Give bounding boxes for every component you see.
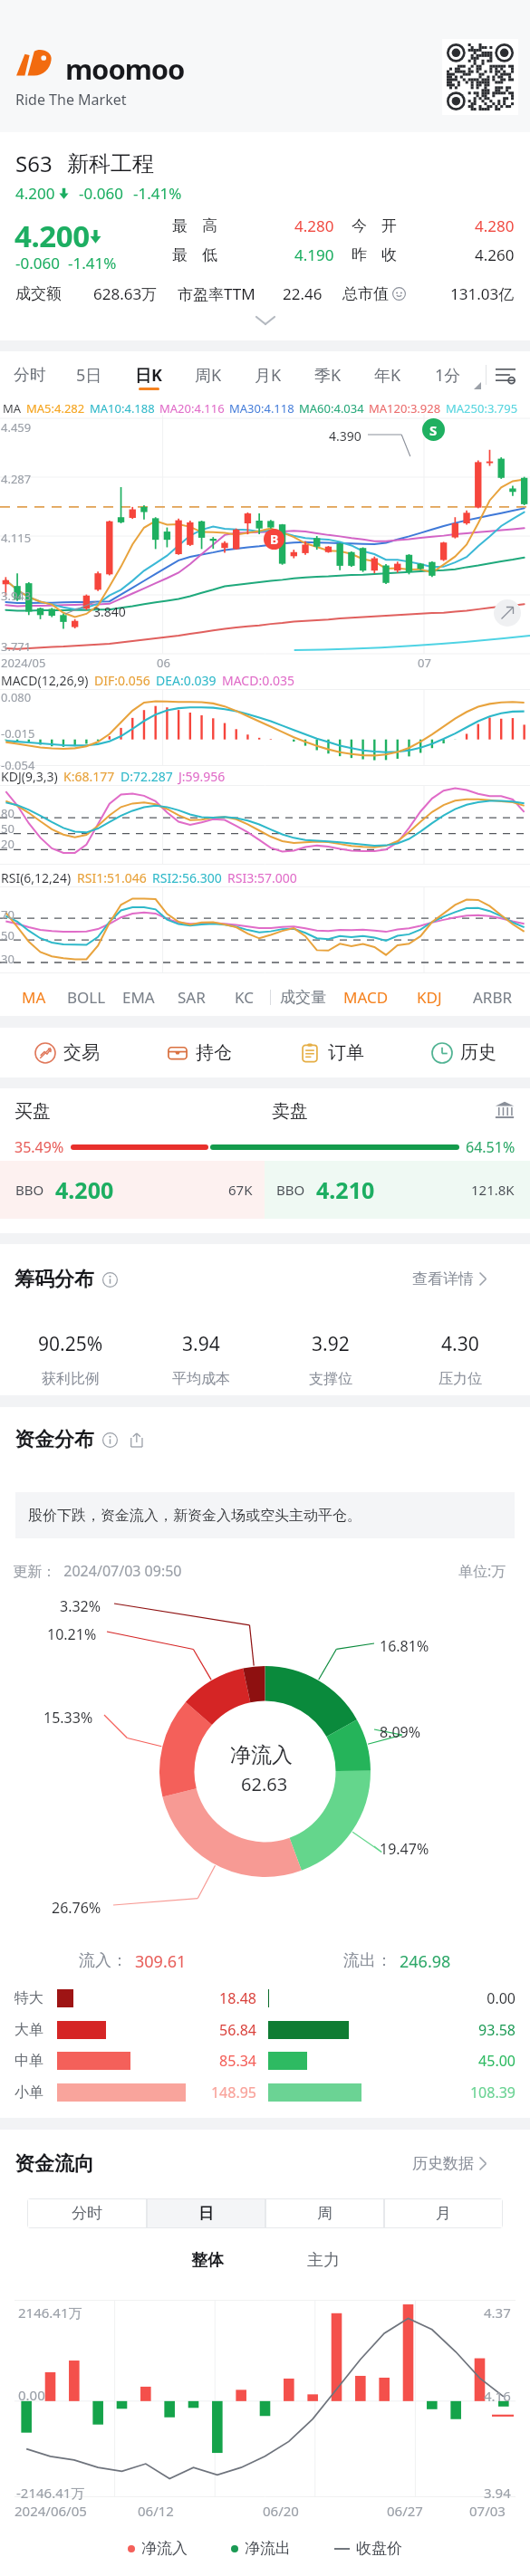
button[interactable]: KDJ [398, 978, 461, 1016]
staticText: 45.00 [406, 2051, 516, 2071]
staticText: Ride The Market [15, 90, 127, 110]
staticText: J:59.956 [178, 768, 226, 785]
staticText: 流出： [343, 1950, 392, 1971]
button[interactable]: 日K [119, 351, 178, 398]
staticText: RSI3:57.000 [227, 869, 297, 886]
staticText: 分时 [14, 365, 46, 386]
button[interactable]: Chart settings [477, 351, 530, 398]
button[interactable]: BBO [15, 1161, 253, 1219]
staticText: 周 [317, 2204, 332, 2223]
button[interactable]: MA [7, 978, 60, 1016]
staticText: 2024/05 [1, 655, 46, 671]
staticText: MA60:4.034 [299, 400, 364, 417]
button[interactable]: 历史数据 [412, 2154, 487, 2173]
button[interactable]: 订单 [265, 1028, 398, 1077]
button[interactable]: Expand chart [494, 599, 521, 627]
staticText: 分时 [72, 2204, 102, 2223]
button[interactable]: 主力 [298, 2250, 349, 2271]
staticText: 季K [314, 364, 342, 387]
staticText: 06/20 [263, 2502, 299, 2520]
staticText: 30 [1, 951, 14, 967]
button[interactable]: MACD [334, 978, 398, 1016]
staticText: 资金分布 [14, 1427, 94, 1452]
staticText: 90.25% [38, 1331, 103, 1357]
button[interactable]: 成交量 [271, 978, 334, 1016]
button[interactable]: 年K [358, 351, 418, 398]
staticText: D:72.287 [120, 768, 173, 785]
button[interactable]: 5日 [59, 351, 119, 398]
button[interactable]: Share [128, 1432, 144, 1448]
staticText: MA250:3.795 [446, 400, 518, 417]
staticText: 85.34 [195, 2051, 256, 2071]
staticText: 2146.41万 [18, 2303, 82, 2322]
button[interactable]: Exchange info [493, 1098, 516, 1122]
staticText: SAR [178, 987, 206, 1008]
staticText: 0.00 [406, 1988, 516, 2008]
staticText: 19.47% [380, 1839, 429, 1859]
button[interactable]: 季K [298, 351, 358, 398]
staticText: 62.63 [241, 1772, 288, 1796]
staticText: 131.03亿 [450, 283, 515, 304]
staticText: 历史数据 [412, 2154, 474, 2173]
staticText: MA10:4.188 [90, 400, 155, 417]
staticText: 8.09% [380, 1722, 421, 1742]
button[interactable]: 交易 [0, 1028, 133, 1077]
staticText: KDJ [417, 987, 442, 1008]
staticText: S63 [15, 148, 53, 178]
staticText: 主力 [307, 2250, 340, 2271]
button[interactable]: 1分 [418, 351, 477, 398]
staticText: 06/12 [138, 2502, 174, 2520]
button[interactable]: 周 [266, 2199, 383, 2227]
staticText: ARBR [473, 987, 513, 1008]
staticText: 总市值 [342, 284, 389, 303]
button[interactable]: 分时 [0, 351, 59, 398]
staticText: 80 [1, 805, 14, 821]
button[interactable]: 分时 [28, 2199, 146, 2227]
button[interactable]: 查看详情 [412, 1269, 487, 1288]
button[interactable]: KC [217, 978, 270, 1016]
staticText: 成交额 [15, 284, 62, 303]
staticText: 64.51% [466, 1137, 516, 1157]
button[interactable]: 历史 [398, 1028, 530, 1077]
staticText: MA [3, 400, 22, 417]
staticText: 4.459 [1, 419, 32, 436]
button[interactable]: 持仓 [133, 1028, 265, 1077]
staticText: 买盘 [14, 1100, 51, 1123]
staticText: 4.16 [484, 2387, 511, 2405]
staticText: 日 [198, 2204, 214, 2223]
staticText: 4.200 [15, 183, 55, 204]
button[interactable]: 月K [238, 351, 298, 398]
staticText: BBO [15, 1181, 44, 1199]
button[interactable]: 月 [385, 2199, 502, 2227]
staticText: 2024/06/05 [14, 2502, 87, 2520]
staticText: 4.30 [441, 1331, 479, 1357]
staticText: 筹码分布 [14, 1267, 94, 1292]
staticText: 309.61 [135, 1950, 187, 1973]
staticText: BOLL [67, 987, 106, 1008]
staticText: 净流出 [245, 2539, 291, 2558]
staticText: MA120:3.928 [369, 400, 441, 417]
staticText: 121.8K [471, 1181, 515, 1199]
button[interactable]: 整体 [182, 2250, 233, 2271]
button[interactable]: BOLL [60, 978, 112, 1016]
button[interactable]: 周K [178, 351, 238, 398]
button[interactable]: BBO [276, 1161, 515, 1219]
staticText: 06 [157, 655, 170, 671]
staticText: 交易 [63, 1041, 100, 1064]
button[interactable]: 日 [148, 2199, 265, 2227]
staticText: 成交量 [280, 988, 326, 1007]
staticText: 压力位 [438, 1370, 482, 1388]
staticText: moomoo [65, 50, 185, 88]
staticText: 5日 [76, 364, 102, 387]
button[interactable]: EMA [112, 978, 165, 1016]
staticText: 净流入 [230, 1742, 293, 1768]
staticText: 净流入 [141, 2539, 188, 2558]
staticText: KC [235, 987, 254, 1008]
staticText: MACD [343, 987, 389, 1008]
staticText: B [270, 531, 279, 548]
staticText: KDJ(9,3,3) [1, 768, 58, 785]
staticText: 更新： 2024/07/03 09:50 [13, 1561, 182, 1581]
staticText: 1分 [435, 364, 461, 387]
button[interactable]: SAR [165, 978, 217, 1016]
button[interactable]: ARBR [461, 978, 525, 1016]
